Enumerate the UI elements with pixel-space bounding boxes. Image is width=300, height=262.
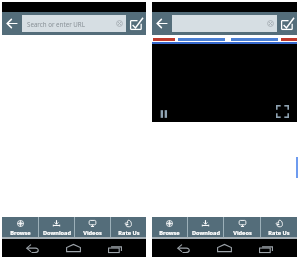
button[interactable]: Videos: [75, 217, 110, 237]
button[interactable]: Home: [53, 239, 94, 257]
staticText: Rate Us: [268, 229, 290, 237]
button[interactable]: Back: [163, 239, 204, 257]
staticText: Download: [43, 229, 71, 237]
button[interactable]: Home: [204, 239, 245, 257]
button[interactable]: Download: [39, 217, 74, 237]
button[interactable]: Videos: [224, 217, 260, 237]
button[interactable]: Rate Us: [111, 217, 146, 237]
button[interactable]: Back: [152, 12, 172, 35]
button[interactable]: Rate Us: [261, 217, 297, 237]
button[interactable]: Recents: [245, 239, 286, 257]
button[interactable]: Edit: [277, 12, 297, 35]
button[interactable]: Edit: [126, 12, 146, 35]
button[interactable]: Back: [13, 239, 53, 257]
button[interactable]: Recents: [94, 239, 135, 257]
button[interactable]: Pause: [160, 110, 168, 118]
button[interactable]: Browse: [2, 217, 38, 237]
button[interactable]: Search or enter URL: [22, 15, 126, 32]
button[interactable]: Download: [188, 217, 223, 237]
staticText: Videos: [233, 229, 252, 237]
staticText: Search or enter URL: [27, 20, 85, 28]
button[interactable]: Browse: [152, 217, 187, 237]
staticText: Download: [192, 229, 220, 237]
staticText: Browse: [10, 229, 31, 237]
button[interactable]: Fullscreen: [276, 105, 289, 118]
staticText: Videos: [83, 229, 102, 237]
button[interactable]: [172, 15, 277, 32]
staticText: Browse: [159, 229, 180, 237]
staticText: Rate Us: [118, 229, 140, 237]
button[interactable]: Back: [2, 12, 22, 35]
